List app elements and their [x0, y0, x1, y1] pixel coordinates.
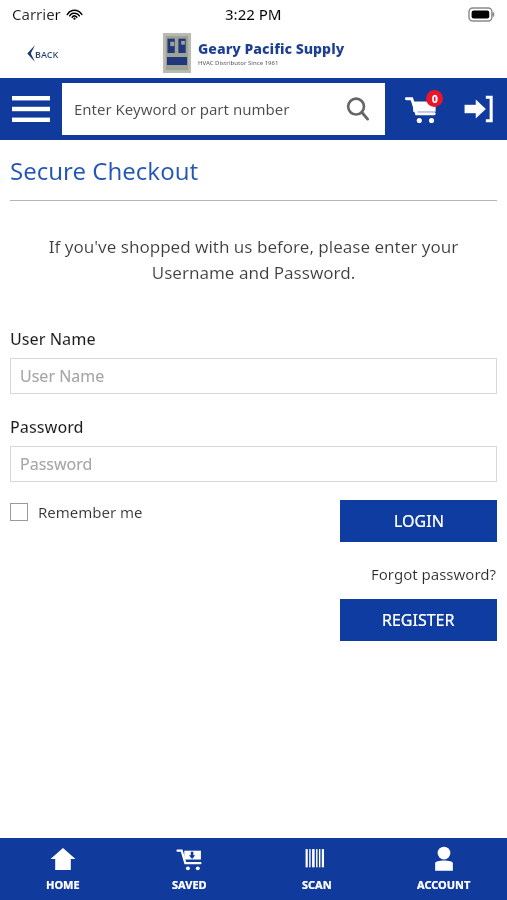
button[interactable]: ACCOUNT — [380, 838, 507, 900]
staticText: 3:22 PM — [225, 4, 282, 24]
button[interactable]: Enter Keyword or part number — [62, 83, 385, 135]
staticText: Secure Checkout — [10, 154, 199, 187]
staticText: HVAC Distributor Since 1961 — [198, 59, 279, 67]
button[interactable]: Remember me — [10, 500, 143, 524]
button[interactable]: SAVED — [126, 838, 253, 900]
staticText: Password — [20, 453, 93, 475]
button[interactable]: LOGIN — [340, 500, 497, 542]
button[interactable]: Search — [343, 94, 373, 124]
staticText: LOGIN — [394, 510, 444, 532]
staticText: Geary Pacific Supply — [198, 39, 345, 58]
staticText: Password — [10, 416, 84, 438]
staticText: Forgot password? — [371, 564, 497, 584]
staticText: REGISTER — [382, 609, 455, 631]
staticText: SCAN — [302, 877, 332, 892]
staticText: Remember me — [38, 502, 143, 522]
button[interactable]: Forgot password? — [371, 562, 497, 586]
staticText: User Name — [10, 328, 96, 350]
button[interactable]: HOME — [0, 838, 126, 900]
staticText: BACK — [35, 48, 59, 60]
staticText: Enter Keyword or part number — [74, 99, 290, 119]
button[interactable]: Sign in — [449, 78, 507, 140]
staticText: If you've shopped with us before, please… — [20, 235, 487, 284]
staticText: Carrier — [12, 4, 61, 24]
button[interactable]: User Name — [10, 358, 497, 394]
button[interactable]: SCAN — [253, 838, 380, 900]
staticText: ACCOUNT — [417, 877, 471, 892]
button[interactable]: Menu — [0, 78, 62, 140]
button[interactable]: BACK — [20, 39, 63, 68]
staticText: 0 — [432, 92, 438, 106]
staticText: SAVED — [172, 877, 207, 892]
button[interactable]: Password — [10, 446, 497, 482]
staticText: User Name — [20, 365, 105, 387]
button[interactable]: REGISTER — [340, 599, 497, 641]
staticText: HOME — [46, 877, 80, 892]
button[interactable]: Cart — [395, 78, 449, 140]
